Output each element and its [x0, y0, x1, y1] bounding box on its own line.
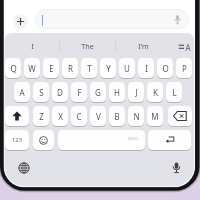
staticText: Q [10, 63, 17, 74]
button[interactable]: A [14, 82, 30, 102]
staticText: T [87, 63, 92, 74]
button[interactable]: P [176, 58, 192, 78]
button[interactable]: S [33, 82, 49, 102]
staticText: F [77, 87, 82, 98]
staticText: I'm [138, 41, 149, 51]
button[interactable]: I [138, 58, 154, 78]
staticText: A [185, 42, 191, 53]
button[interactable]: N [128, 106, 144, 126]
button[interactable]: G [90, 82, 106, 102]
staticText: C [76, 111, 82, 122]
staticText: Y [106, 63, 111, 74]
button[interactable] [5, 106, 29, 126]
button[interactable]: L [166, 82, 182, 102]
staticText: E [49, 63, 54, 74]
button[interactable]: 123 [5, 130, 29, 150]
staticText: N [133, 111, 140, 122]
button[interactable]: E [43, 58, 59, 78]
button[interactable]: J [128, 82, 144, 102]
staticText: DUO [128, 136, 138, 142]
button[interactable]: U [119, 58, 135, 78]
staticText: I [31, 41, 34, 51]
staticText: Z [39, 111, 44, 122]
staticText: The [81, 41, 94, 51]
staticText: U [124, 63, 130, 74]
button[interactable] [168, 106, 192, 126]
staticText: H [114, 87, 120, 98]
staticText: K [153, 87, 158, 98]
button[interactable] [35, 9, 189, 29]
staticText: A [19, 87, 25, 98]
staticText: P [182, 63, 187, 74]
button[interactable]: O [157, 58, 173, 78]
staticText: W [28, 63, 36, 74]
button[interactable] [33, 130, 54, 150]
button[interactable]: T [81, 58, 97, 78]
staticText: G [95, 87, 101, 98]
staticText: M [151, 111, 159, 122]
button[interactable] [58, 130, 145, 150]
staticText: I [145, 63, 148, 74]
staticText: R [68, 63, 73, 74]
staticText: S [39, 87, 44, 98]
button[interactable]: V [90, 106, 106, 126]
button[interactable]: W [24, 58, 40, 78]
button[interactable]: Y [100, 58, 116, 78]
staticText: 123 [12, 136, 22, 144]
staticText: V [96, 111, 101, 122]
button[interactable]: F [71, 82, 87, 102]
button[interactable]: Q [5, 58, 21, 78]
button[interactable]: M [147, 106, 163, 126]
staticText: X [58, 111, 63, 122]
button[interactable]: K [147, 82, 163, 102]
staticText: B [114, 111, 120, 122]
staticText: J [135, 87, 138, 98]
staticText: D [57, 87, 63, 98]
staticText: L [172, 87, 177, 98]
button[interactable]: B [109, 106, 125, 126]
button[interactable]: R [62, 58, 78, 78]
staticText: O [162, 63, 169, 74]
button[interactable]: X [52, 106, 68, 126]
button[interactable]: C [71, 106, 87, 126]
button[interactable]: H [109, 82, 125, 102]
button[interactable]: D [52, 82, 68, 102]
button[interactable] [148, 130, 191, 150]
button[interactable]: Z [33, 106, 49, 126]
button[interactable] [13, 14, 28, 29]
